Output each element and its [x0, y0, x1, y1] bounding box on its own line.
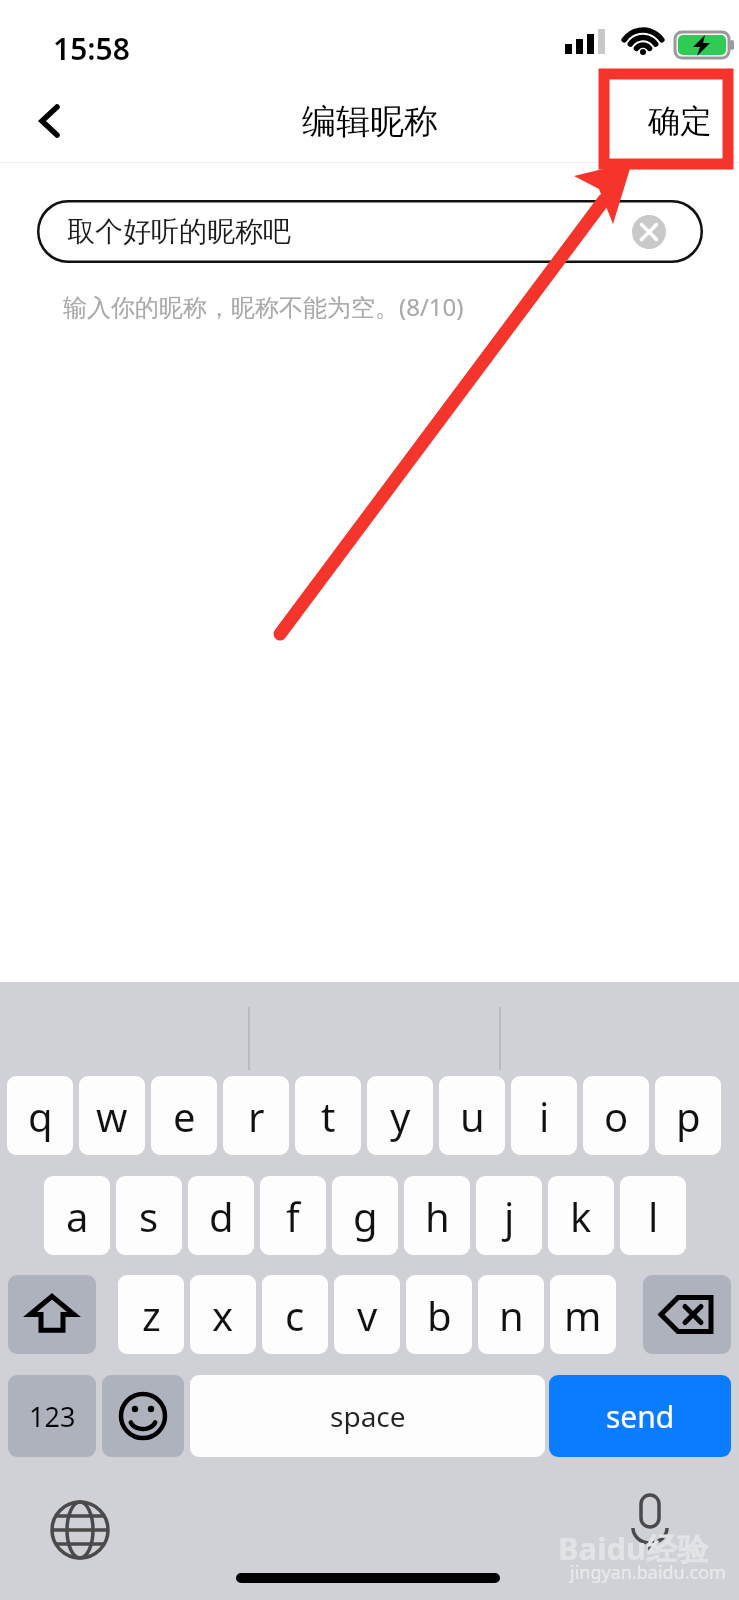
button[interactable]: p — [655, 1076, 721, 1155]
staticText: l — [648, 1189, 659, 1243]
button[interactable]: v — [334, 1275, 400, 1354]
button[interactable]: a — [44, 1176, 110, 1255]
staticText: y — [390, 1089, 411, 1143]
button[interactable]: r — [223, 1076, 289, 1155]
button[interactable]: Backspace — [643, 1275, 731, 1354]
staticText: o — [604, 1089, 629, 1143]
staticText: v — [357, 1288, 378, 1342]
button[interactable]: n — [478, 1275, 544, 1354]
button[interactable]: Emoji — [102, 1375, 184, 1457]
staticText: 15:58 — [53, 28, 130, 69]
staticText: g — [353, 1189, 378, 1243]
button[interactable]: o — [583, 1076, 649, 1155]
staticText: d — [209, 1189, 234, 1243]
button[interactable]: h — [404, 1176, 470, 1255]
staticText: i — [539, 1089, 550, 1143]
button[interactable]: k — [548, 1176, 614, 1255]
staticText: w — [96, 1089, 128, 1143]
staticText: b — [427, 1288, 452, 1342]
staticText: 取个好听的昵称吧 — [67, 214, 291, 249]
button[interactable]: Clear text — [631, 214, 667, 250]
button[interactable]: u — [439, 1076, 505, 1155]
button[interactable]: i — [511, 1076, 577, 1155]
button[interactable]: x — [190, 1275, 256, 1354]
staticText: x — [212, 1288, 234, 1342]
staticText: s — [139, 1189, 159, 1243]
staticText: k — [570, 1189, 592, 1243]
staticText: 编辑昵称 — [302, 100, 438, 143]
staticText: p — [676, 1089, 701, 1143]
staticText: f — [286, 1189, 300, 1243]
staticText: jingyan.baidu.com — [570, 1560, 726, 1585]
button[interactable]: send — [549, 1375, 731, 1457]
button[interactable]: y — [367, 1076, 433, 1155]
button[interactable]: w — [79, 1076, 145, 1155]
staticText: c — [285, 1288, 305, 1342]
button[interactable]: f — [260, 1176, 326, 1255]
staticText: Baidu经验 — [558, 1527, 709, 1569]
button[interactable]: 确定 — [635, 80, 725, 162]
button[interactable]: Change keyboard — [42, 1492, 117, 1567]
button[interactable]: space — [190, 1375, 545, 1457]
button[interactable]: e — [151, 1076, 217, 1155]
staticText: 输入你的昵称，昵称不能为空。(8/10) — [63, 290, 464, 323]
button[interactable]: j — [476, 1176, 542, 1255]
staticText: e — [173, 1089, 196, 1143]
button[interactable]: z — [118, 1275, 184, 1354]
staticText: u — [460, 1089, 485, 1143]
staticText: a — [66, 1189, 89, 1243]
button[interactable]: q — [7, 1076, 73, 1155]
staticText: q — [28, 1089, 53, 1143]
button[interactable]: t — [295, 1076, 361, 1155]
staticText: h — [425, 1189, 450, 1243]
button[interactable]: l — [620, 1176, 686, 1255]
staticText: r — [248, 1089, 265, 1143]
staticText: n — [499, 1288, 524, 1342]
button[interactable]: d — [188, 1176, 254, 1255]
button[interactable]: Back — [12, 80, 92, 162]
staticText: m — [564, 1288, 602, 1342]
staticText: send — [606, 1396, 675, 1437]
staticText: space — [330, 1397, 406, 1435]
button[interactable]: s — [116, 1176, 182, 1255]
button[interactable]: Shift — [8, 1275, 96, 1354]
button[interactable]: c — [262, 1275, 328, 1354]
button[interactable]: 取个好听的昵称吧 — [37, 200, 703, 263]
staticText: z — [142, 1288, 161, 1342]
staticText: t — [321, 1089, 336, 1143]
button[interactable]: Voice input — [610, 1482, 690, 1562]
staticText: 123 — [29, 1398, 76, 1435]
staticText: j — [504, 1189, 515, 1243]
button[interactable]: m — [550, 1275, 616, 1354]
staticText: 确定 — [648, 101, 712, 141]
button[interactable]: g — [332, 1176, 398, 1255]
button[interactable]: 123 — [8, 1375, 96, 1457]
button[interactable]: b — [406, 1275, 472, 1354]
